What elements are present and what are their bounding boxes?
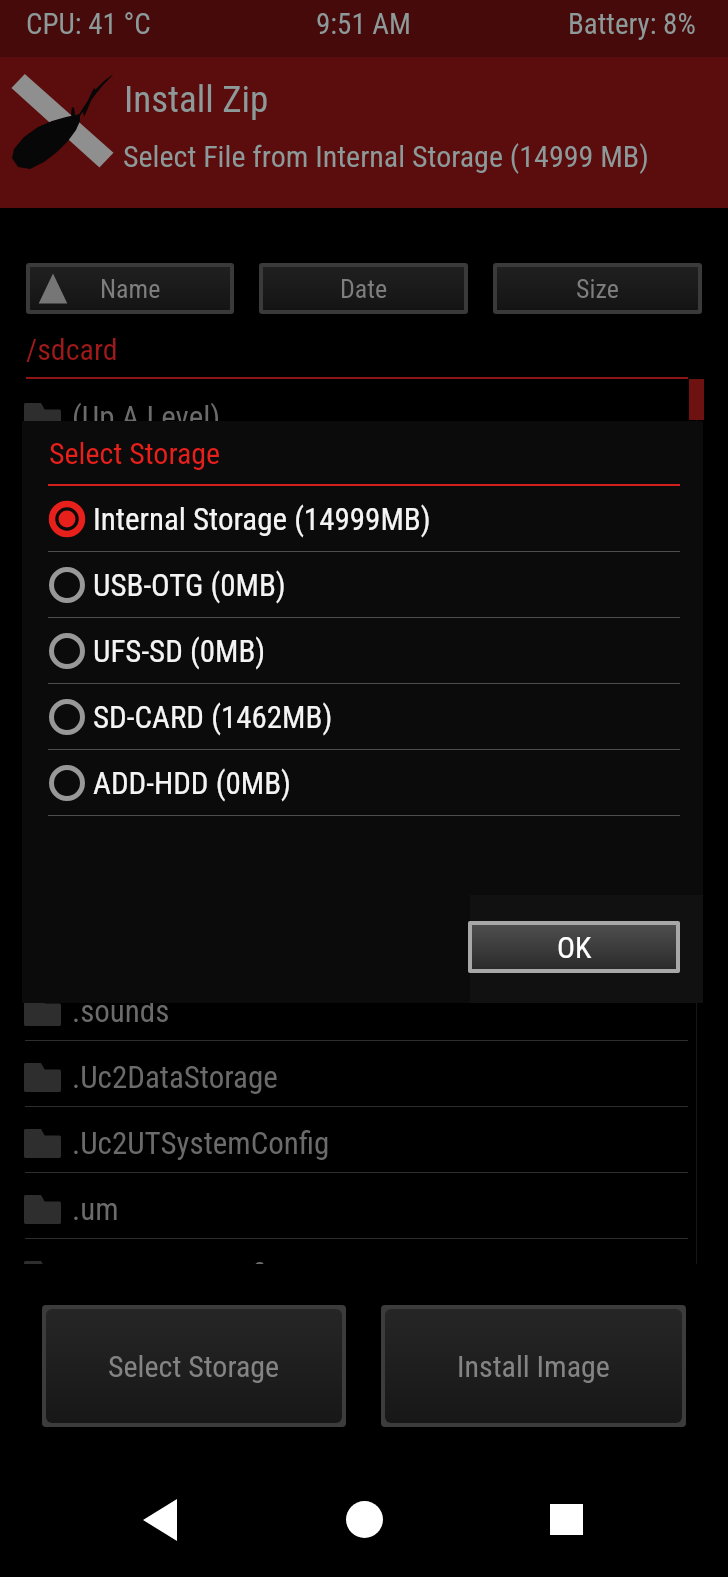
button[interactable]: OK bbox=[472, 925, 676, 969]
button[interactable]: Date bbox=[263, 267, 464, 310]
button[interactable]: .DataStorage bbox=[0, 645, 728, 711]
staticText: (Up A Level) bbox=[72, 399, 221, 435]
button[interactable]: Size bbox=[497, 267, 698, 310]
button[interactable]: Recent apps bbox=[472, 1462, 660, 1577]
staticText: .goPlayStore bbox=[72, 795, 228, 831]
button[interactable]: .android_secure bbox=[0, 447, 728, 513]
button[interactable]: .BackupRestore bbox=[0, 513, 728, 579]
button[interactable]: ADD-HDD (0MB) bbox=[22, 750, 703, 816]
staticText: Select File from Internal Storage (14999… bbox=[123, 139, 649, 174]
staticText: Install Image bbox=[457, 1349, 610, 1384]
staticText: .BackupRestore bbox=[72, 531, 264, 567]
staticText: .sounds bbox=[72, 993, 170, 1029]
staticText: .um bbox=[72, 1191, 119, 1227]
staticText: .Uc2UTSystemConfig bbox=[72, 1125, 330, 1161]
staticText: Name bbox=[100, 274, 161, 304]
button[interactable]: USB-OTG (0MB) bbox=[22, 552, 703, 618]
button[interactable]: .estrongs bbox=[0, 711, 728, 777]
button[interactable]: .sounds bbox=[0, 975, 728, 1041]
staticText: CPU: 41 °C bbox=[26, 7, 151, 41]
staticText: Size bbox=[576, 274, 619, 304]
button[interactable]: Back bbox=[66, 1462, 254, 1577]
staticText: Date bbox=[340, 274, 388, 304]
button[interactable]: Select Storage bbox=[46, 1309, 342, 1423]
button[interactable]: .Uc2DataStorage bbox=[0, 1041, 728, 1107]
button[interactable]: .goPlayStore bbox=[0, 777, 728, 843]
button[interactable]: .UTSystemConfig bbox=[0, 1239, 728, 1264]
button[interactable]: (Up A Level) bbox=[0, 381, 728, 447]
staticText: USB-OTG (0MB) bbox=[93, 567, 286, 603]
staticText: Install Zip bbox=[124, 78, 269, 121]
button[interactable]: .um bbox=[0, 1173, 728, 1239]
staticText: 9:51 AM bbox=[316, 7, 412, 41]
staticText: Internal Storage (14999MB) bbox=[93, 501, 431, 537]
staticText: Battery: 8% bbox=[568, 7, 696, 41]
button[interactable]: .Uc2UTSystemConfig bbox=[0, 1107, 728, 1173]
button[interactable]: Install Image bbox=[385, 1309, 682, 1423]
staticText: .Uc2DataStorage bbox=[72, 1059, 278, 1095]
staticText: ADD-HDD (0MB) bbox=[93, 765, 291, 801]
button[interactable]: .cache bbox=[0, 579, 728, 645]
staticText: .cache bbox=[72, 597, 154, 633]
staticText: .android_secure bbox=[72, 465, 267, 501]
staticText: UFS-SD (0MB) bbox=[93, 633, 266, 669]
staticText: .DataStorage bbox=[72, 663, 231, 699]
staticText: .estrongs bbox=[72, 729, 188, 765]
staticText: Select Storage bbox=[49, 436, 221, 471]
button[interactable]: SD-CARD (1462MB) bbox=[22, 684, 703, 750]
staticText: OK bbox=[557, 930, 592, 965]
staticText: SD-CARD (1462MB) bbox=[93, 699, 333, 735]
button[interactable]: .ringtones bbox=[0, 909, 728, 975]
staticText: Select Storage bbox=[108, 1349, 280, 1384]
staticText: .UTSystemConfig bbox=[72, 1257, 283, 1264]
button[interactable]: Name bbox=[30, 267, 230, 310]
button[interactable]: Home bbox=[270, 1462, 458, 1577]
staticText: /sdcard bbox=[26, 332, 118, 367]
button[interactable]: .MicroMsg bbox=[0, 843, 728, 909]
button[interactable]: Internal Storage (14999MB) bbox=[22, 486, 703, 552]
button[interactable]: UFS-SD (0MB) bbox=[22, 618, 703, 684]
